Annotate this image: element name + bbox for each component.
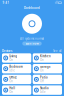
staticText: Living bbox=[9, 54, 17, 58]
button[interactable]: Living bbox=[2, 53, 31, 63]
staticText: Dashboard bbox=[24, 6, 40, 10]
button[interactable]: Office bbox=[2, 75, 31, 84]
staticText: All systems normal bbox=[20, 37, 44, 40]
staticText: Studio bbox=[40, 86, 49, 90]
staticText: Devices bbox=[2, 49, 12, 53]
staticText: On bbox=[40, 69, 44, 72]
staticText: On bbox=[9, 58, 13, 62]
staticText: 9:41 bbox=[2, 1, 9, 4]
button[interactable]: Bedroom bbox=[2, 64, 31, 73]
button[interactable]: Garage bbox=[33, 64, 62, 73]
staticText: Hall bbox=[9, 86, 15, 90]
staticText: Idle bbox=[40, 90, 46, 94]
staticText: On bbox=[40, 58, 44, 62]
button[interactable]: Scan now bbox=[22, 41, 42, 45]
staticText: Patio bbox=[40, 76, 48, 79]
staticText: Off bbox=[40, 79, 44, 83]
staticText: See all bbox=[53, 49, 62, 53]
button[interactable]: See all bbox=[53, 49, 62, 53]
staticText: Office bbox=[9, 76, 17, 79]
staticText: Kitchen bbox=[40, 54, 51, 58]
staticText: On bbox=[9, 79, 13, 83]
staticText: Garage bbox=[40, 65, 51, 69]
button[interactable]: Patio bbox=[33, 75, 62, 84]
staticText: Scan now bbox=[25, 42, 38, 45]
button[interactable]: Studio bbox=[33, 85, 62, 95]
button[interactable]: Kitchen bbox=[33, 53, 62, 63]
staticText: Bedroom bbox=[9, 65, 23, 69]
button[interactable]: Hall bbox=[2, 85, 31, 95]
staticText: ıll bbox=[55, 1, 58, 4]
staticText: Idle bbox=[9, 69, 15, 72]
staticText: On bbox=[9, 90, 13, 94]
